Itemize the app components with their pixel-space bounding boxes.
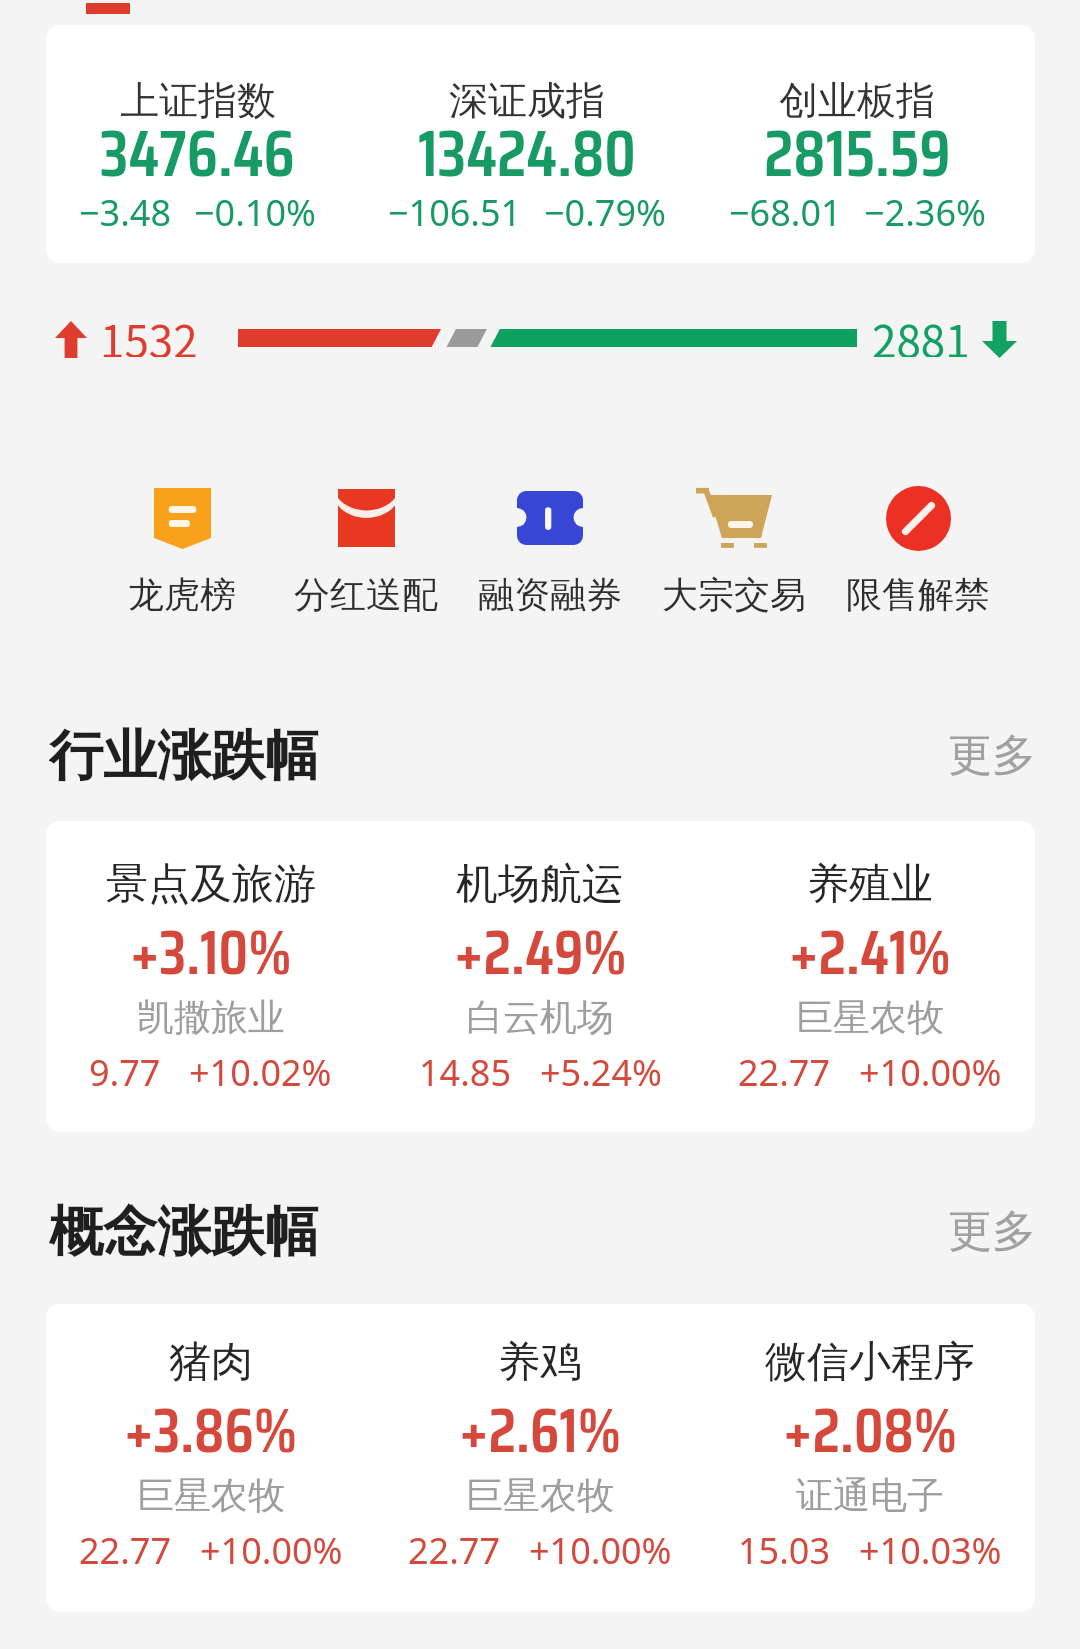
staticText: 2815.59: [764, 101, 951, 181]
staticText: 大宗交易: [662, 572, 806, 617]
staticText: 行业涨跌幅: [49, 722, 319, 788]
staticText: 巨星农牧: [796, 994, 944, 1041]
staticText: 15.03: [738, 1526, 831, 1575]
staticText: 凯撒旅业: [137, 994, 285, 1041]
staticText: 养鸡: [498, 1336, 582, 1389]
staticText: 14.85: [419, 1048, 512, 1097]
staticText: +2.08%: [783, 1382, 958, 1462]
staticText: 分红送配: [294, 572, 438, 617]
staticText: 龙虎榜: [128, 572, 236, 617]
staticText: 22.77: [79, 1526, 172, 1575]
staticText: +10.00%: [529, 1526, 672, 1575]
staticText: +10.00%: [200, 1526, 343, 1575]
staticText: 更多: [948, 728, 1036, 783]
staticText: +2.49%: [454, 904, 627, 984]
button[interactable]: 分红送配: [274, 480, 458, 630]
staticText: 更多: [948, 1204, 1036, 1259]
staticText: +3.10%: [130, 904, 292, 984]
staticText: 深证成指: [449, 76, 605, 125]
other: Advancing: [55, 321, 87, 358]
staticText: 融资融券: [478, 572, 622, 617]
staticText: +2.61%: [459, 1382, 622, 1462]
staticText: 机场航运: [456, 858, 624, 911]
button[interactable]: 大宗交易: [642, 480, 826, 630]
staticText: 限售解禁: [846, 572, 990, 617]
staticText: +5.24%: [540, 1048, 662, 1097]
button[interactable]: 机场航运: [375, 821, 705, 1132]
other: Declining: [982, 321, 1017, 358]
button[interactable]: 养鸡: [375, 1304, 705, 1612]
staticText: +10.02%: [189, 1048, 332, 1097]
staticText: 创业板指: [779, 76, 935, 125]
staticText: 证通电子: [796, 1472, 944, 1519]
button[interactable]: 景点及旅游: [46, 821, 375, 1132]
button[interactable]: 微信小程序: [705, 1304, 1035, 1612]
button[interactable]: 猪肉: [46, 1304, 375, 1612]
staticText: 巨星农牧: [137, 1472, 285, 1519]
staticText: 1532: [100, 307, 198, 357]
staticText: 猪肉: [169, 1336, 253, 1389]
staticText: 13424.80: [418, 101, 636, 181]
button[interactable]: 龙虎榜: [90, 480, 274, 630]
staticText: 上证指数: [120, 76, 276, 125]
staticText: +10.03%: [859, 1526, 1002, 1575]
staticText: 景点及旅游: [106, 858, 316, 911]
staticText: −68.01: [729, 188, 842, 237]
staticText: −2.36%: [864, 188, 986, 237]
button[interactable]: 融资融券: [458, 480, 642, 630]
staticText: −106.51: [388, 188, 522, 237]
button[interactable]: 更多: [948, 1204, 1036, 1259]
button[interactable]: 上证指数: [46, 25, 1035, 263]
staticText: 微信小程序: [765, 1336, 975, 1389]
staticText: 22.77: [738, 1048, 831, 1097]
staticText: 9.77: [89, 1048, 161, 1097]
button[interactable]: 限售解禁: [826, 480, 1010, 630]
staticText: +10.00%: [859, 1048, 1002, 1097]
button[interactable]: 更多: [948, 728, 1036, 783]
staticText: +2.41%: [789, 904, 951, 984]
staticText: 巨星农牧: [466, 1472, 614, 1519]
staticText: +3.86%: [124, 1382, 298, 1462]
staticText: 白云机场: [466, 994, 614, 1041]
button[interactable]: 养殖业: [705, 821, 1035, 1132]
staticText: 概念涨跌幅: [49, 1198, 319, 1264]
staticText: −0.79%: [544, 188, 666, 237]
staticText: 22.77: [408, 1526, 501, 1575]
staticText: 养殖业: [807, 858, 933, 911]
staticText: −0.10%: [194, 188, 316, 237]
staticText: −3.48: [79, 188, 172, 237]
staticText: 2881: [872, 307, 970, 357]
staticText: 3476.46: [100, 101, 295, 181]
